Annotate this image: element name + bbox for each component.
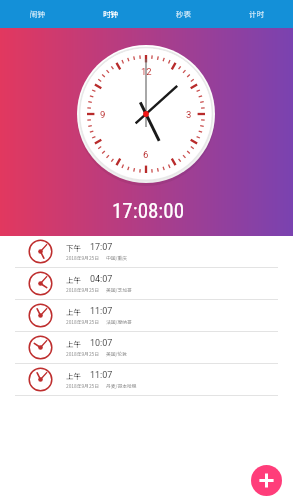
- staticText: 2018年9月25日: [66, 318, 100, 325]
- staticText: 秒表: [176, 8, 191, 19]
- staticText: 中国/重庆: [106, 254, 128, 261]
- staticText: 11:07: [90, 306, 113, 317]
- button[interactable]: 上午: [0, 300, 293, 332]
- staticText: 3: [186, 109, 192, 120]
- button[interactable]: 闹钟: [0, 0, 74, 28]
- button[interactable]: 上午: [0, 268, 293, 300]
- staticText: 12: [141, 66, 152, 77]
- staticText: 10:07: [90, 338, 113, 349]
- button[interactable]: 下午: [0, 236, 293, 268]
- button[interactable]: 秒表: [147, 0, 220, 28]
- staticText: 2018年9月25日: [66, 254, 100, 261]
- button[interactable]: 时钟: [74, 0, 147, 28]
- staticText: 上午: [66, 370, 81, 381]
- staticText: 闹钟: [30, 8, 45, 19]
- staticText: 9: [100, 109, 106, 120]
- staticText: 下午: [66, 242, 81, 253]
- staticText: 计时: [249, 8, 264, 19]
- staticText: 04:07: [90, 274, 113, 285]
- staticText: 法国/摩纳哥: [106, 318, 132, 325]
- staticText: 2018年9月25日: [66, 382, 100, 389]
- staticText: 上午: [66, 274, 81, 285]
- button[interactable]: 上午: [0, 364, 293, 396]
- staticText: 上午: [66, 338, 81, 349]
- staticText: 美国/芝加哥: [106, 286, 132, 293]
- staticText: 美国/伦敦: [106, 350, 128, 357]
- staticText: 11:07: [90, 370, 113, 381]
- staticText: 2018年9月25日: [66, 286, 100, 293]
- staticText: 6: [143, 149, 149, 160]
- staticText: 上午: [66, 306, 81, 317]
- button[interactable]: Add city clock: [251, 465, 282, 496]
- staticText: 丹麦/哥本哈根: [106, 382, 137, 389]
- staticText: 时钟: [103, 8, 118, 19]
- staticText: 17:07: [90, 242, 113, 253]
- staticText: 17:08:00: [112, 199, 185, 224]
- button[interactable]: 计时: [220, 0, 293, 28]
- staticText: 2018年9月25日: [66, 350, 100, 357]
- button[interactable]: 上午: [0, 332, 293, 364]
